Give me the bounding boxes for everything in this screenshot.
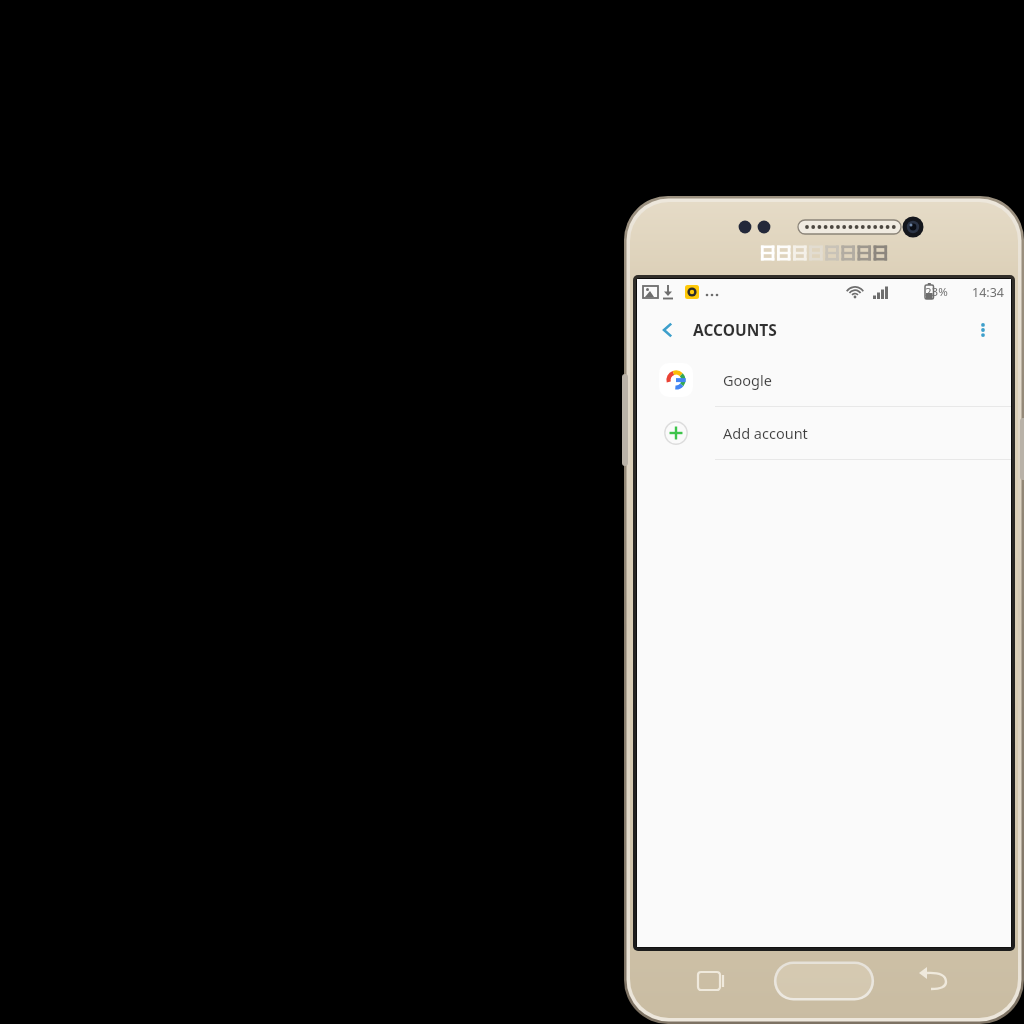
staticText: 14:34 [972, 284, 1004, 301]
button[interactable]: More options [963, 310, 1003, 350]
staticText: Google [723, 370, 772, 390]
button[interactable]: Google [637, 354, 1011, 407]
staticText: ACCOUNTS [693, 319, 777, 340]
button[interactable]: Navigate up [649, 311, 687, 349]
staticText: Add account [723, 423, 808, 443]
button[interactable]: Add account [637, 407, 1011, 460]
staticText: 23% [925, 284, 948, 300]
